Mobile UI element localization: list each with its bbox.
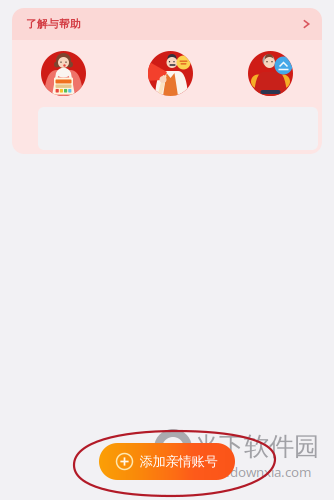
button[interactable]: 在线客服 bbox=[248, 51, 293, 96]
button[interactable]: 常见问题 bbox=[148, 51, 193, 96]
button[interactable]: 添加亲情账号 bbox=[99, 443, 235, 480]
staticText: 当下软件园 bbox=[194, 431, 319, 462]
button[interactable]: 了解服务 bbox=[41, 51, 86, 96]
staticText: www.downxia.com bbox=[196, 463, 311, 481]
staticText: 了解与帮助 bbox=[26, 17, 81, 30]
staticText: 添加亲情账号 bbox=[139, 453, 217, 470]
button[interactable]: 了解与帮助 bbox=[12, 8, 322, 40]
